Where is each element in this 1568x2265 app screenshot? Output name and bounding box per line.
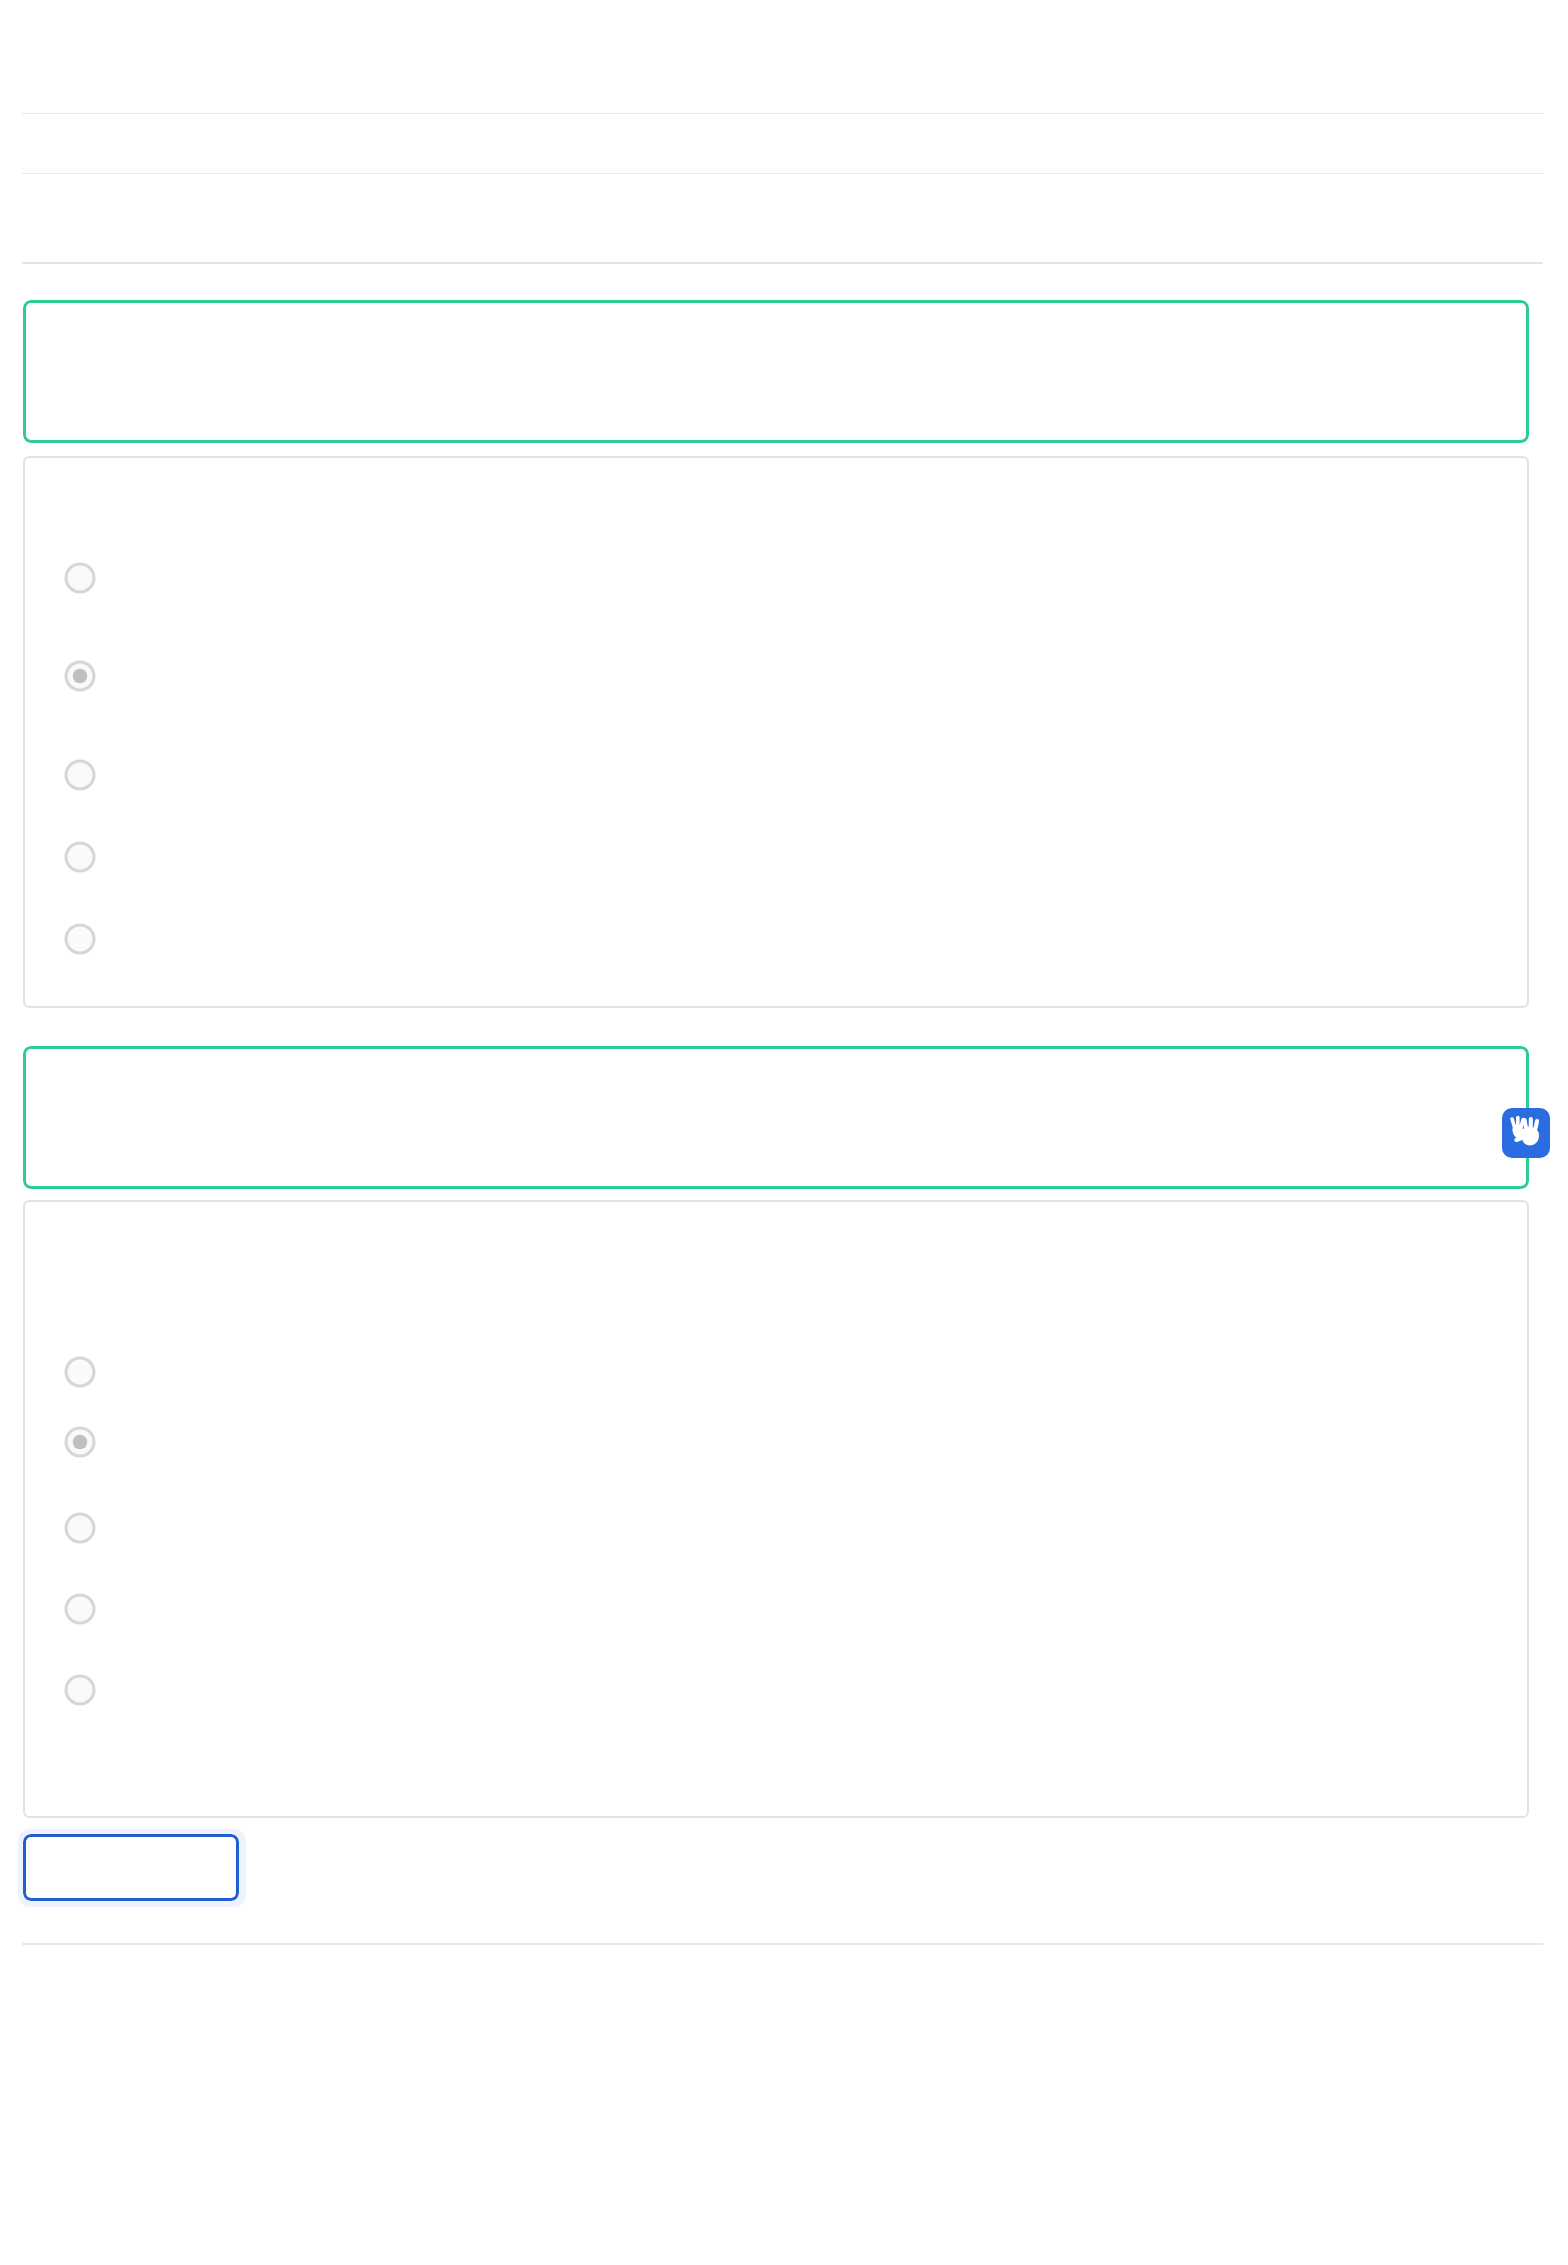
button[interactable]: Option xyxy=(60,656,100,696)
button[interactable]: Option xyxy=(60,1670,100,1710)
button[interactable]: Option xyxy=(60,558,100,598)
button[interactable] xyxy=(23,300,1529,443)
button[interactable]: Option xyxy=(60,1422,100,1462)
button[interactable] xyxy=(23,1046,1529,1189)
button[interactable]: Option xyxy=(60,1508,100,1548)
button[interactable]: Sign language xyxy=(1502,1108,1550,1158)
button[interactable]: Option xyxy=(60,837,100,877)
button[interactable]: Option xyxy=(60,1589,100,1629)
button[interactable]: Option xyxy=(60,919,100,959)
button[interactable] xyxy=(23,1834,239,1901)
button[interactable]: Option xyxy=(60,1352,100,1392)
button[interactable]: Option xyxy=(60,755,100,795)
